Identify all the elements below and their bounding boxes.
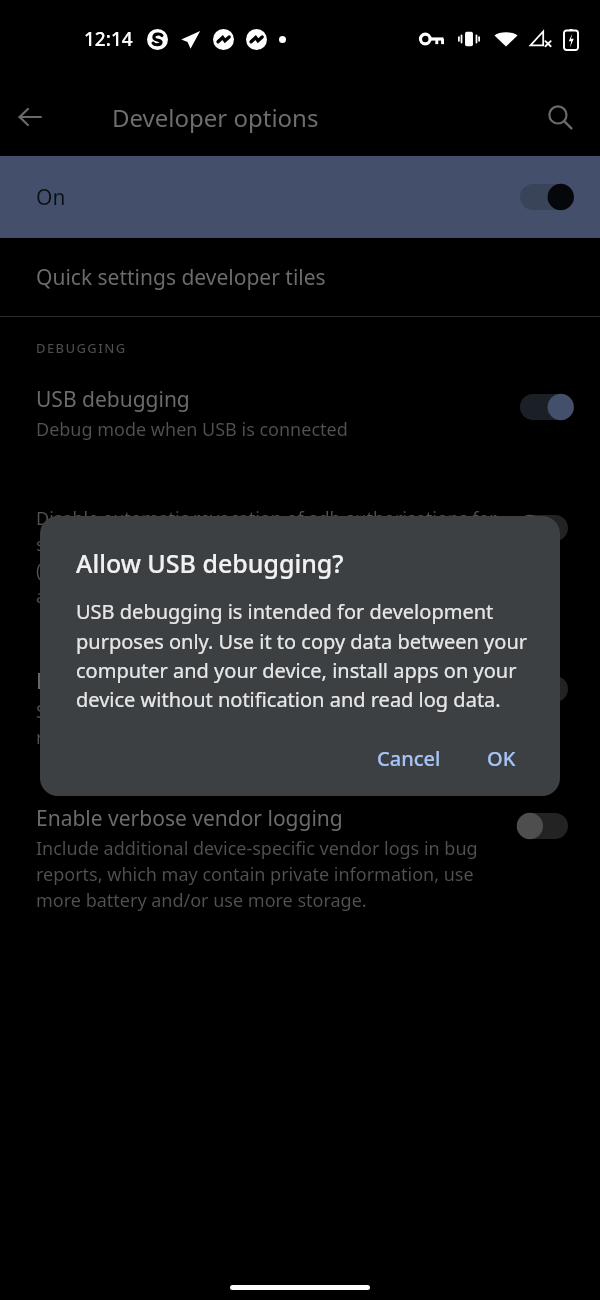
staticText: Show a button in the power menu for taki… (36, 699, 500, 750)
button[interactable]: Bug report shortcut (0, 661, 600, 756)
button[interactable] (518, 385, 576, 429)
staticText: Bug report shortcut (36, 667, 232, 696)
staticText: OK (487, 745, 516, 772)
button[interactable]: OK (471, 735, 532, 782)
button[interactable]: On (0, 156, 600, 238)
button[interactable]: Enable verbose vendor logging (0, 798, 600, 919)
button[interactable]: Quick settings developer tiles (0, 238, 600, 316)
staticText: Disable automatic revocation of adb auth… (36, 506, 500, 609)
button[interactable]: Search (530, 87, 590, 147)
button[interactable]: USB debugging (0, 379, 600, 448)
button[interactable] (518, 667, 576, 711)
staticText: Enable verbose vendor logging (36, 804, 343, 833)
staticText: Developer options (112, 101, 530, 134)
staticText: USB debugging is intended for developmen… (76, 598, 532, 713)
staticText: Include additional device-specific vendo… (36, 836, 500, 913)
button[interactable] (518, 804, 576, 848)
staticText: 12:14 (84, 26, 133, 52)
staticText: DEBUGGING (36, 339, 127, 357)
button[interactable]: Cancel (361, 735, 457, 782)
staticText: On (36, 183, 66, 212)
staticText: Allow USB debugging? (76, 546, 344, 580)
staticText: Cancel (377, 745, 441, 772)
button[interactable]: Disable automatic revocation of adb auth… (0, 504, 600, 609)
staticText: Debug mode when USB is connected (36, 417, 348, 442)
button[interactable] (518, 175, 576, 219)
button[interactable] (518, 506, 576, 550)
staticText: Quick settings developer tiles (36, 263, 326, 292)
button[interactable]: Back (0, 87, 60, 147)
staticText: USB debugging (36, 385, 190, 414)
